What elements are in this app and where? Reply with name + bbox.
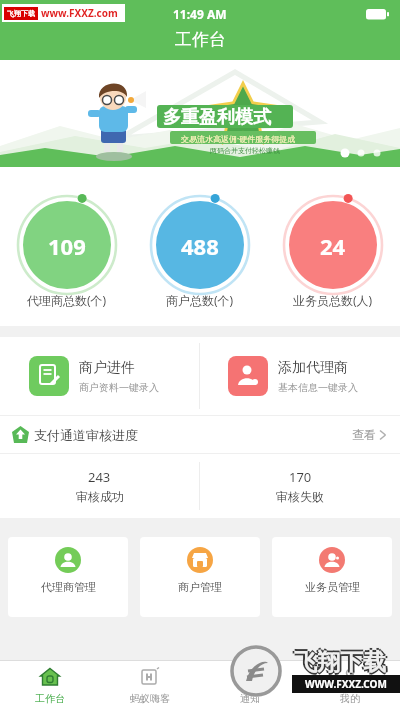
staticText: 飞翔下载 [294,650,386,679]
staticText: 11:49 AM [173,6,227,22]
staticText: 代理商管理 [41,580,96,594]
button[interactable]: 商户进件 [0,337,199,415]
button[interactable]: 243 [0,454,199,518]
button[interactable]: 488 [133,167,267,326]
button[interactable]: 工作台 [0,661,100,710]
staticText: 工作台 [175,29,226,50]
staticText: 飞翔下载 [294,646,386,675]
staticText: 24 [320,231,346,261]
staticText: 商户管理 [178,580,222,594]
staticText: 代理商总数(个) [27,292,107,308]
staticText: 商户进件 [79,359,135,377]
staticText: 交易流水高返佣·硬件服务得提成 [181,133,296,144]
staticText: 飞翔下载 [292,648,384,677]
staticText: 工作台 [35,692,65,705]
button[interactable]: 24 [266,167,400,326]
staticText: 109 [48,231,86,261]
button[interactable]: 蚂蚁嗨客 [100,661,200,710]
staticText: 审核成功 [76,489,124,504]
staticText: 通知 [240,692,260,705]
button[interactable]: 支付通道审核进度 [0,416,400,453]
staticText: 商户资料一键录入 [79,381,159,394]
button[interactable]: 我的 [300,661,400,710]
staticText: 业务员总数(人) [293,292,373,308]
staticText: 飞翔下载 [294,648,386,677]
staticText: 飞翔下载 [296,648,388,677]
staticText: WWW.FXXZ.COM [305,677,387,691]
staticText: 查看 [352,427,376,442]
staticText: 业务员管理 [305,580,360,594]
button[interactable]: 多重盈利模式 [0,60,400,167]
staticText: 蚂蚁嗨客 [130,692,170,705]
staticText: 多重盈利模式 [163,106,271,129]
button[interactable]: 业务员管理 [272,537,392,617]
button[interactable]: 商户管理 [140,537,260,617]
staticText: 我的 [340,692,360,705]
staticText: 飞翔下载 [7,9,35,18]
button[interactable]: 109 [0,167,134,326]
staticText: www.FXXZ.com [41,6,118,20]
staticText: 添加代理商 [278,359,348,377]
button[interactable]: 代理商管理 [8,537,128,617]
staticText: 170 [289,468,312,486]
button[interactable]: 170 [200,454,400,518]
staticText: 两码合并支付轻松赚钱 [210,146,280,155]
staticText: 支付通道审核进度 [34,427,138,443]
staticText: 商户总数(个) [166,292,234,308]
staticText: 基本信息一键录入 [278,381,358,394]
staticText: 488 [181,231,219,261]
button[interactable]: 通知 [200,661,300,710]
staticText: 审核失败 [276,489,324,504]
staticText: 243 [88,468,111,486]
button[interactable]: 添加代理商 [200,337,400,415]
